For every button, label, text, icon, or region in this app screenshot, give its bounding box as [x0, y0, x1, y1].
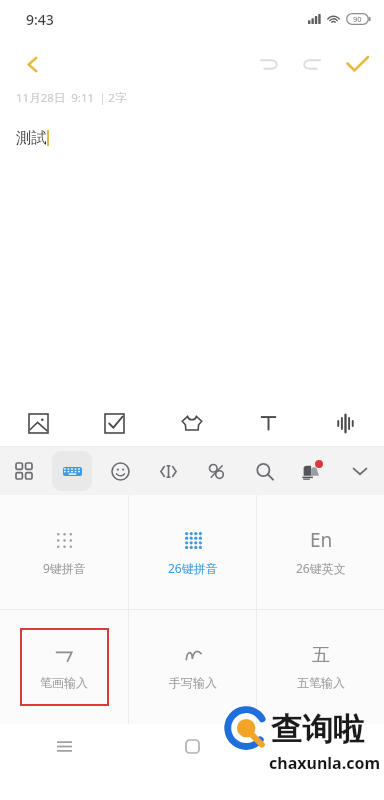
button[interactable]: Back [256, 724, 384, 769]
staticText: 五 [312, 644, 330, 667]
button[interactable]: Style [153, 400, 230, 446]
staticText: En [310, 527, 333, 553]
button[interactable]: Checklist [76, 400, 153, 446]
button[interactable]: Search [240, 447, 288, 495]
button[interactable]: Back [10, 42, 54, 86]
button[interactable]: Emoji [96, 447, 144, 495]
button[interactable]: 五 [257, 610, 384, 724]
button[interactable]: 笔画输入 [0, 610, 128, 724]
button[interactable]: Move cursor [144, 447, 192, 495]
button[interactable]: Keyboard [48, 447, 96, 495]
staticText: 笔画输入 [40, 675, 88, 690]
button[interactable]: 26键拼音 [129, 495, 256, 609]
staticText: 90 [353, 14, 362, 24]
button[interactable]: Home [128, 724, 256, 769]
button[interactable]: Insert image [0, 400, 76, 446]
button[interactable]: Recent apps [0, 724, 128, 769]
button[interactable]: Text format [230, 400, 307, 446]
button[interactable]: Train tickets [288, 447, 336, 495]
staticText: 查询啦 [271, 710, 364, 749]
button[interactable]: 手写输入 [129, 610, 256, 724]
button[interactable]: Redo [290, 42, 334, 86]
staticText: 手写输入 [169, 675, 217, 690]
button[interactable]: Keyboard layouts [0, 447, 48, 495]
staticText: 9键拼音 [43, 560, 86, 576]
staticText: chaxunla.com [269, 752, 380, 774]
staticText: 測試 [16, 128, 47, 148]
button[interactable]: En [257, 495, 384, 609]
staticText: 26键拼音 [168, 560, 218, 576]
button[interactable]: Collapse keyboard [336, 447, 384, 495]
staticText: 9:43 [26, 10, 54, 29]
button[interactable]: Voice input [307, 400, 384, 446]
button[interactable]: Undo [246, 42, 290, 86]
button[interactable]: Done [334, 41, 380, 87]
staticText: 五笔输入 [297, 675, 345, 690]
button[interactable]: Clipboard [192, 447, 240, 495]
staticText: 26键英文 [296, 560, 346, 576]
staticText: 11月28日 9:11 ｜2字 [16, 90, 127, 106]
button[interactable]: 9键拼音 [0, 495, 128, 609]
